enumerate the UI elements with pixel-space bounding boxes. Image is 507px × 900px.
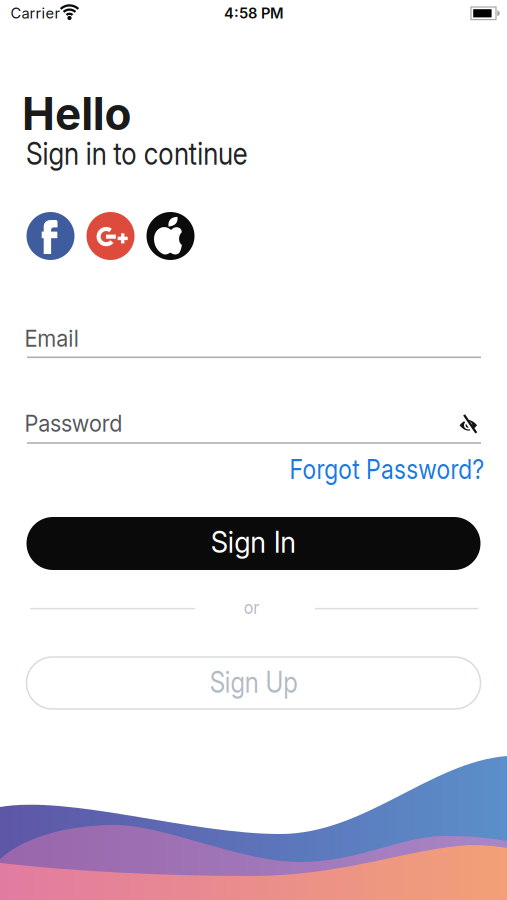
button[interactable]: Forgot Password? <box>275 454 499 485</box>
button[interactable]: Sign in with Facebook <box>26 212 74 260</box>
staticText: or <box>242 596 260 618</box>
staticText: Sign In <box>208 525 299 559</box>
staticText: 4:58 PM <box>224 4 284 22</box>
textField[interactable]: Password <box>0 0 507 900</box>
textField[interactable]: Email <box>0 0 507 900</box>
staticText: Email <box>24 324 84 352</box>
staticText: Password <box>24 409 131 437</box>
staticText: Sign in to continue <box>26 135 282 172</box>
staticText: Carrier <box>10 4 60 22</box>
staticText: Hello <box>22 87 135 140</box>
button[interactable]: Sign In <box>26 517 480 570</box>
button[interactable]: Sign Up <box>26 657 480 709</box>
button[interactable]: Sign in with Google <box>86 212 134 260</box>
staticText: Forgot Password? <box>275 454 499 485</box>
button[interactable]: Sign in with Apple <box>146 212 194 260</box>
staticText: Sign Up <box>201 665 306 699</box>
button[interactable]: Show password <box>455 412 481 438</box>
